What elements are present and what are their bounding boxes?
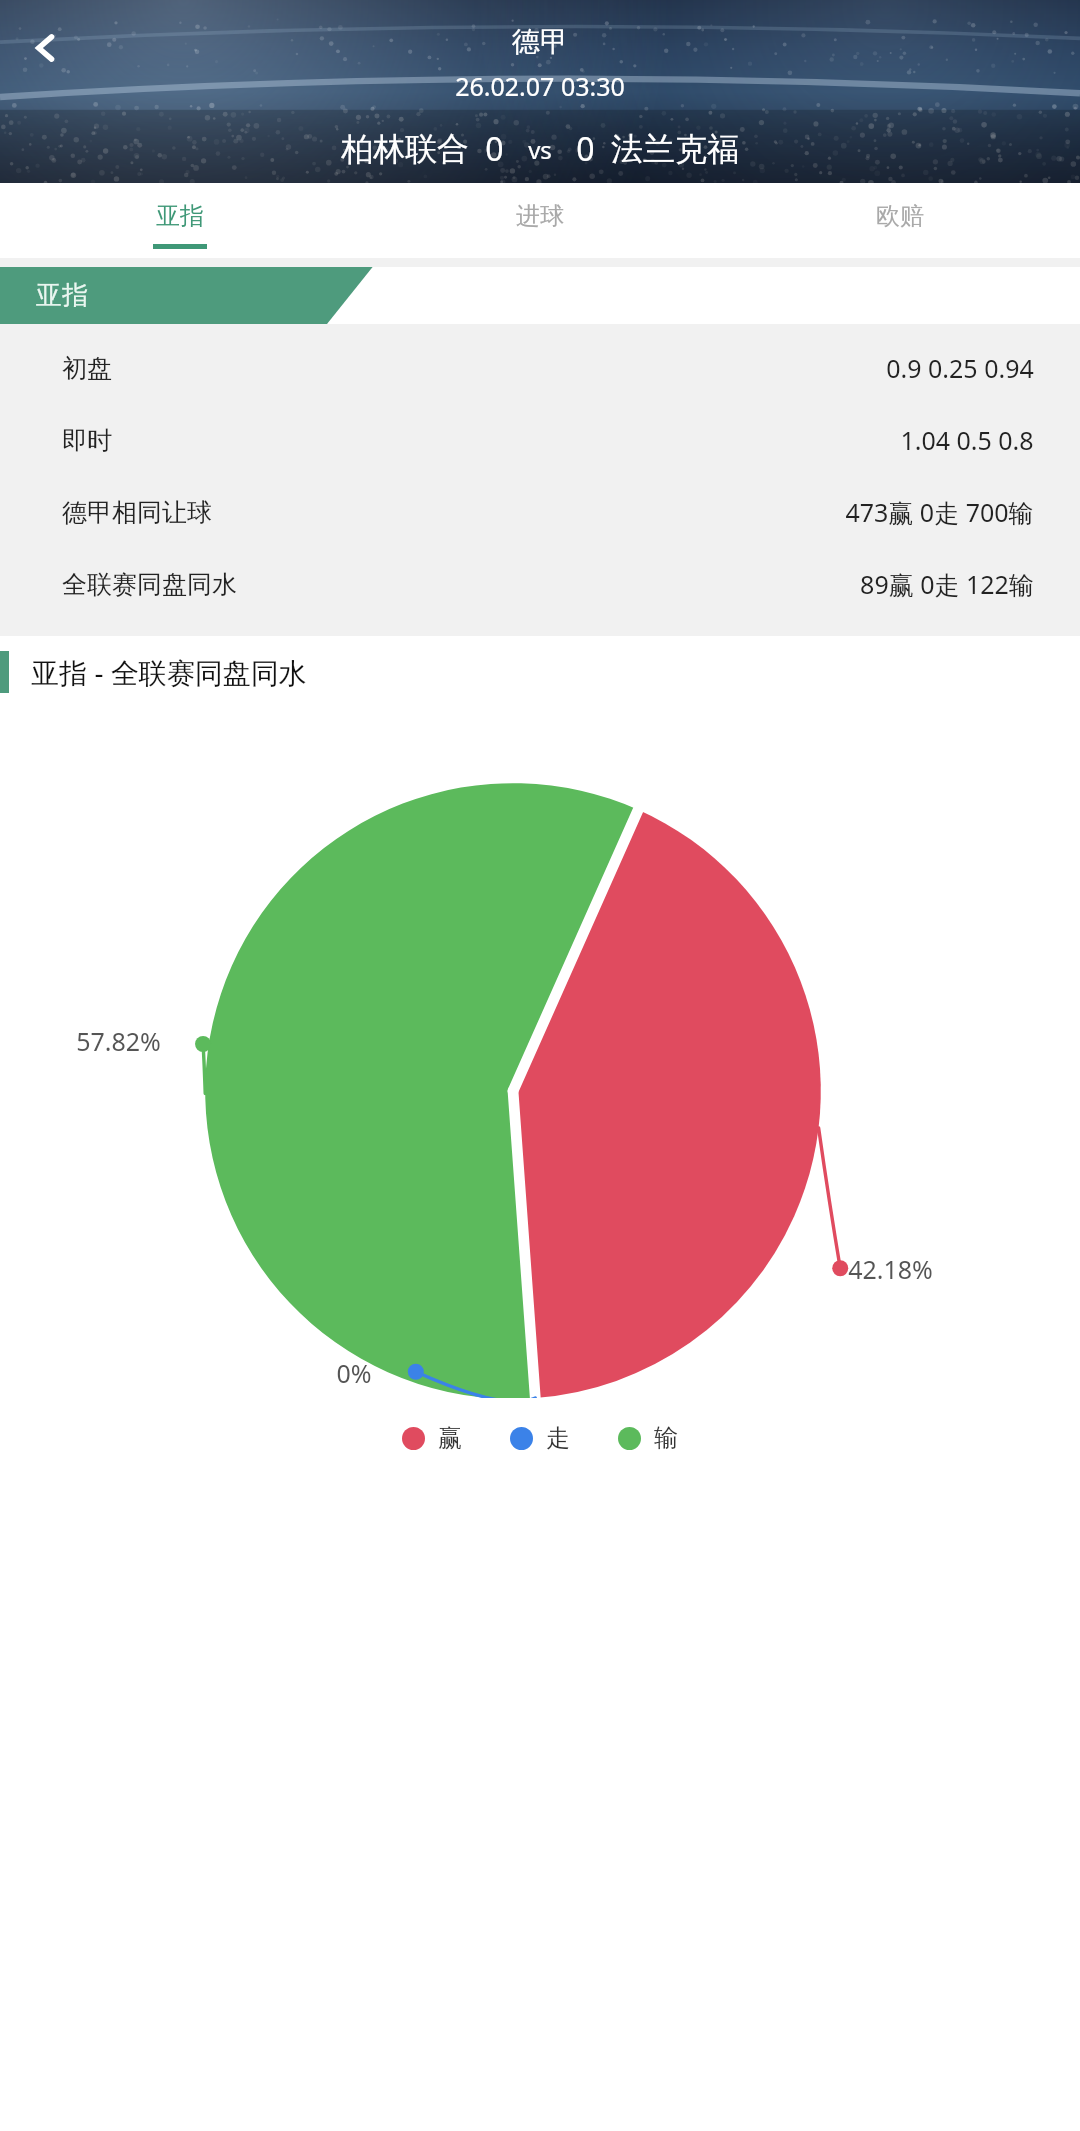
staticText: 进球 bbox=[516, 201, 564, 231]
staticText: 473赢 0走 700输 bbox=[845, 495, 1034, 529]
staticText: 德甲相同让球 bbox=[62, 497, 212, 528]
button[interactable]: 德甲相同让球 bbox=[0, 476, 1080, 548]
button[interactable]: 欧赔 bbox=[720, 183, 1080, 258]
staticText: 89赢 0走 122输 bbox=[860, 567, 1034, 601]
staticText: 0% bbox=[336, 1356, 372, 1390]
staticText: 26.02.07 03:30 bbox=[455, 69, 625, 103]
staticText: 全联赛同盘同水 bbox=[62, 569, 237, 600]
staticText: 0 bbox=[485, 127, 504, 171]
button[interactable]: 亚指 bbox=[0, 183, 360, 258]
button[interactable]: 赢 bbox=[402, 1423, 462, 1453]
staticText: 1.04 0.5 0.8 bbox=[900, 423, 1034, 457]
staticText: 57.82% bbox=[76, 1024, 161, 1058]
staticText: 输 bbox=[654, 1423, 678, 1453]
staticText: vs bbox=[528, 133, 552, 166]
button[interactable]: Back bbox=[18, 20, 74, 76]
button[interactable]: 输 bbox=[618, 1423, 678, 1453]
staticText: 赢 bbox=[438, 1423, 462, 1453]
staticText: 亚指 bbox=[36, 279, 88, 312]
staticText: 42.18% bbox=[848, 1252, 933, 1286]
button[interactable]: 初盘 bbox=[0, 332, 1080, 404]
staticText: 走 bbox=[546, 1423, 570, 1453]
staticText: 法兰克福 bbox=[611, 129, 739, 169]
staticText: 德甲 bbox=[512, 24, 568, 59]
staticText: 亚指 bbox=[156, 201, 204, 231]
button[interactable]: 走 bbox=[510, 1423, 570, 1453]
staticText: 柏林联合 bbox=[341, 129, 469, 169]
staticText: 即时 bbox=[62, 425, 112, 456]
staticText: 0.9 0.25 0.94 bbox=[886, 351, 1034, 385]
staticText: 欧赔 bbox=[876, 201, 924, 231]
staticText: 初盘 bbox=[62, 353, 112, 384]
button[interactable]: 进球 bbox=[360, 183, 720, 258]
button[interactable]: 即时 bbox=[0, 404, 1080, 476]
staticText: 0 bbox=[576, 127, 595, 171]
button[interactable]: 全联赛同盘同水 bbox=[0, 548, 1080, 620]
staticText: 亚指 - 全联赛同盘同水 bbox=[31, 653, 307, 691]
